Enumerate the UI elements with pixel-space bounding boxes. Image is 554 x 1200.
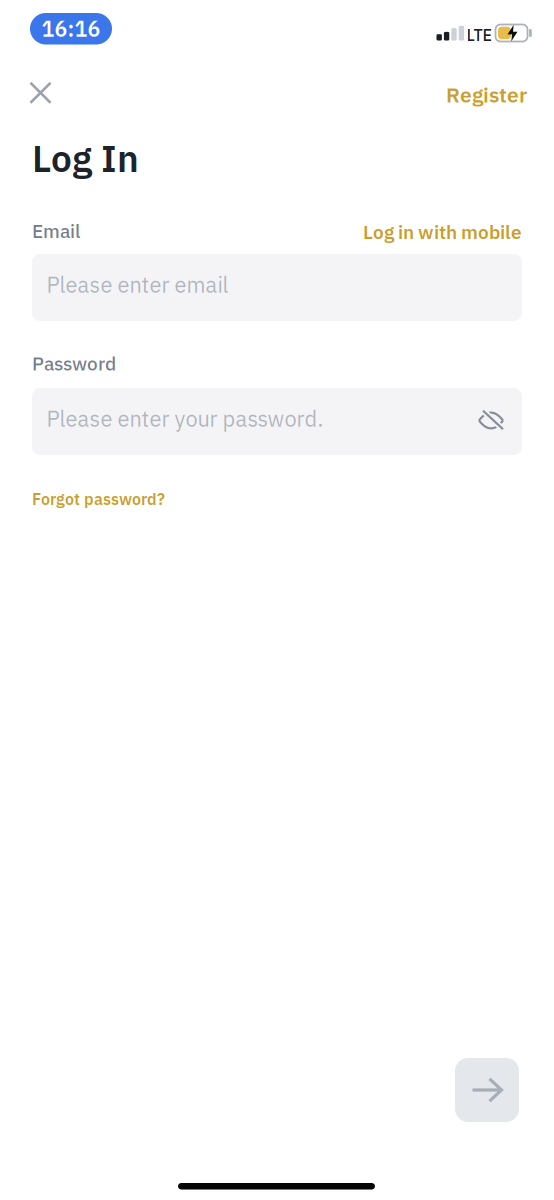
staticText: Log In: [32, 134, 139, 182]
button[interactable]: Register: [446, 81, 527, 108]
button[interactable]: [24, 77, 56, 109]
button[interactable]: Forgot password?: [32, 488, 165, 509]
button[interactable]: Please enter your password.: [32, 388, 522, 455]
staticText: Please enter your password.: [46, 404, 323, 433]
staticText: Register: [446, 81, 527, 108]
button[interactable]: [455, 1058, 519, 1122]
staticText: Email: [32, 218, 80, 243]
button[interactable]: Log in with mobile: [363, 219, 522, 244]
staticText: Password: [32, 351, 116, 376]
button[interactable]: Please enter email: [32, 254, 522, 321]
staticText: Log in with mobile: [363, 219, 522, 244]
button[interactable]: 16:16: [30, 13, 112, 44]
staticText: Please enter email: [46, 270, 228, 299]
staticText: 16:16: [41, 15, 100, 43]
staticText: LTE: [466, 24, 491, 45]
staticText: Forgot password?: [32, 488, 165, 509]
